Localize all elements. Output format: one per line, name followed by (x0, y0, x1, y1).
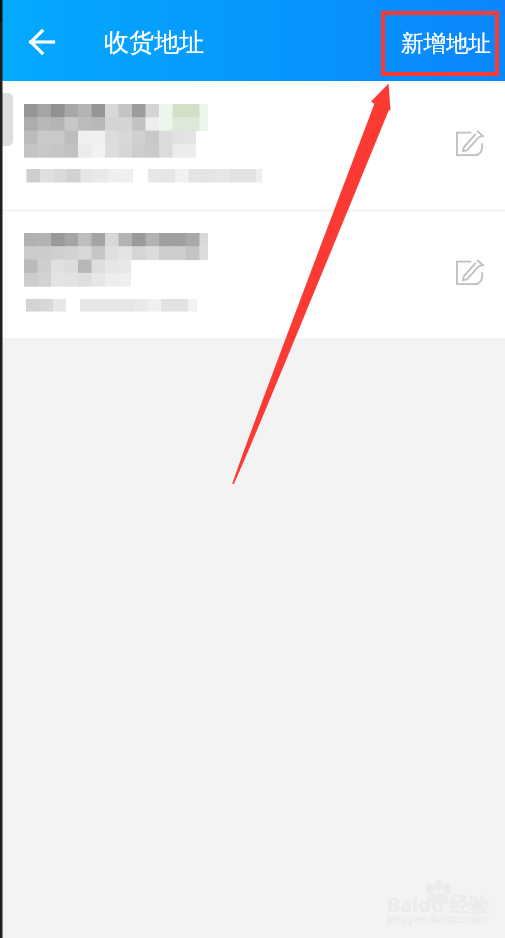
staticText: 新增地址 (401, 29, 491, 57)
staticText: Baidu 经验 (387, 891, 490, 918)
staticText: jingyan.baidu.com (387, 911, 489, 926)
staticText: 收货地址 (104, 27, 204, 58)
button[interactable]: Edit address (455, 257, 484, 286)
button[interactable]: 新增地址 (401, 29, 491, 57)
button[interactable]: Back (12, 12, 72, 72)
button[interactable]: Edit address (455, 128, 484, 157)
